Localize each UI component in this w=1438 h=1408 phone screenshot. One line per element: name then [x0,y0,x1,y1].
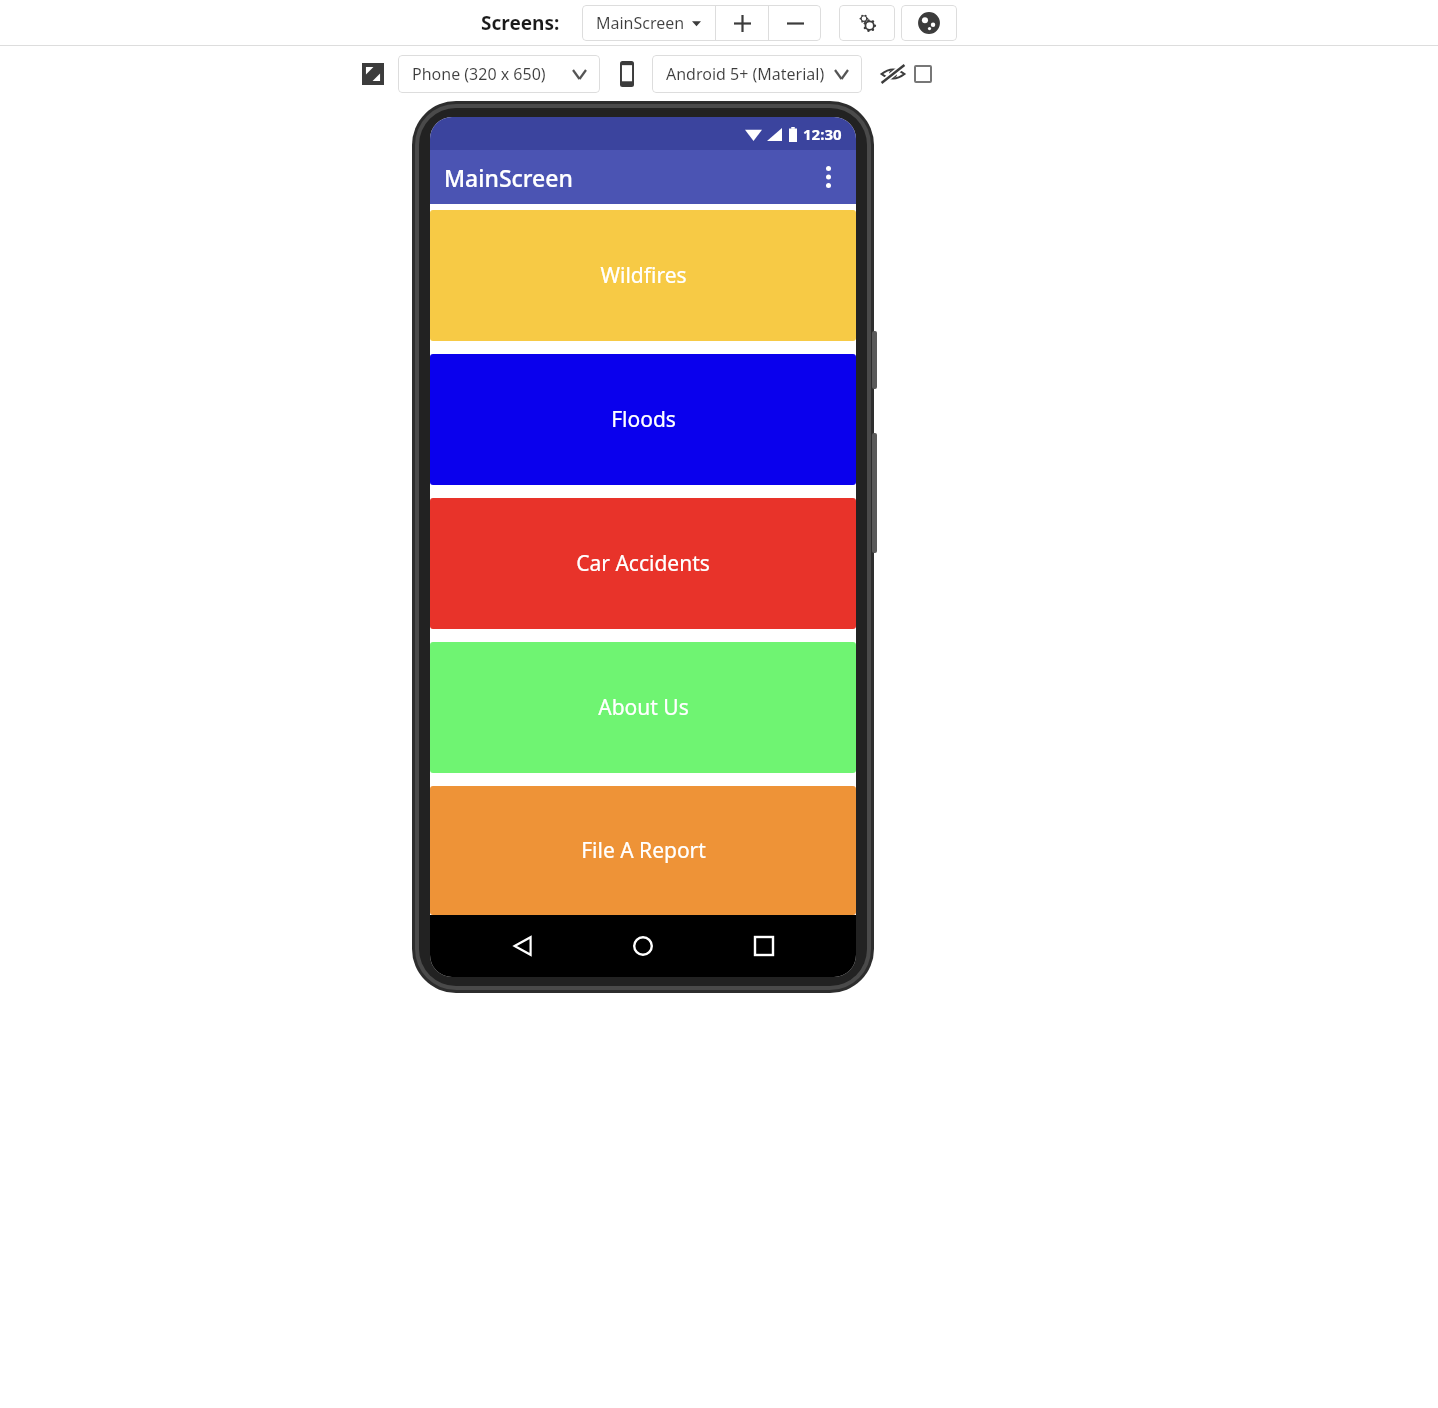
button[interactable]: Toggle overlay [914,65,932,83]
staticText: File A Report [581,836,706,865]
button[interactable]: Car Accidents [430,498,856,629]
staticText: Screens: [481,10,560,36]
staticText: About Us [598,693,689,722]
button[interactable]: Android 5+ (Material) [652,55,862,93]
button[interactable]: Resize [362,63,384,85]
button[interactable]: Device orientation [620,61,634,87]
staticText: MainScreen [444,162,573,193]
button[interactable]: Floods [430,354,856,485]
button[interactable]: Hide overlays [880,64,906,84]
button[interactable]: Phone (320 x 650) [398,55,600,93]
button[interactable]: MainScreen [582,5,715,41]
button[interactable]: Back [495,918,551,974]
button[interactable]: Preview in browser [901,5,957,41]
button[interactable]: Home [615,918,671,974]
staticText: MainScreen [596,12,685,34]
button[interactable]: Wildfires [430,210,856,341]
button[interactable]: Remove screen [769,5,821,41]
staticText: Phone (320 x 650) [412,63,546,85]
button[interactable]: Add screen [716,5,768,41]
button[interactable]: Settings [839,5,895,41]
button[interactable]: Recent apps [736,918,792,974]
staticText: Car Accidents [576,549,710,578]
staticText: 12:30 [803,124,842,144]
staticText: Floods [611,405,676,434]
button[interactable]: More options [806,155,850,199]
staticText: Wildfires [600,261,687,290]
button[interactable]: About Us [430,642,856,773]
button[interactable]: File A Report [430,786,856,915]
staticText: Android 5+ (Material) [666,63,825,85]
